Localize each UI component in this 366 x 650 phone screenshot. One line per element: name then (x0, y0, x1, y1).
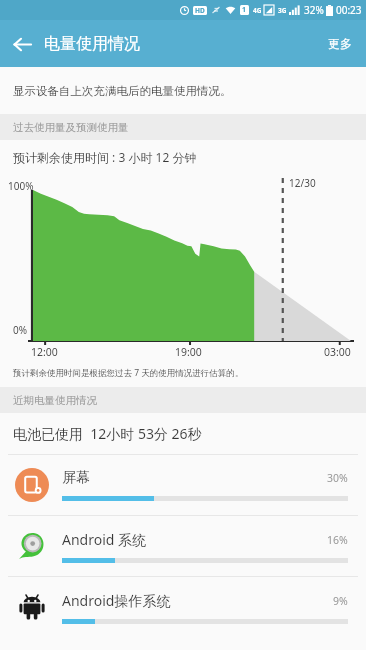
button[interactable]: Android操作系统 (0, 577, 366, 637)
staticText: 03:00 (324, 345, 351, 358)
staticText: 19:00 (175, 345, 202, 358)
staticText: 近期电量使用情况 (13, 394, 97, 407)
staticText: HD (195, 6, 205, 15)
staticText: 30% (327, 471, 348, 485)
staticText: 显示设备自上次充满电后的电量使用情况。 (13, 84, 232, 98)
button[interactable]: Android 系统 (0, 516, 366, 576)
staticText: 预计剩余使用时间是根据您过去 7 天的使用情况进行估算的。 (13, 367, 244, 379)
staticText: Android 系统 (62, 530, 327, 549)
staticText: 过去使用量及预测使用量 (13, 121, 129, 134)
staticText: 屏幕 (62, 469, 327, 487)
staticText: 0% (13, 323, 28, 337)
button[interactable]: 屏幕 (0, 455, 366, 515)
staticText: 电池已使用 12小时 53分 26秒 (13, 424, 202, 443)
staticText: 3G (278, 6, 287, 15)
staticText: 32% (304, 3, 324, 17)
staticText: 电量使用情况 (44, 34, 140, 54)
staticText: 更多 (328, 36, 352, 51)
staticText: 预计剩余使用时间 : 3 小时 12 分钟 (13, 149, 197, 165)
staticText: 1 (242, 5, 247, 15)
staticText: 12/30 (289, 176, 316, 190)
staticText: 00:23 (336, 3, 362, 17)
staticText: Android操作系统 (62, 591, 333, 610)
staticText: 16% (327, 533, 348, 547)
button[interactable]: Back (0, 22, 44, 66)
staticText: 12:00 (31, 345, 58, 358)
button[interactable]: 更多 (320, 30, 360, 57)
staticText: 100% (8, 179, 34, 193)
staticText: 4G (253, 6, 262, 15)
staticText: 9% (333, 594, 348, 608)
